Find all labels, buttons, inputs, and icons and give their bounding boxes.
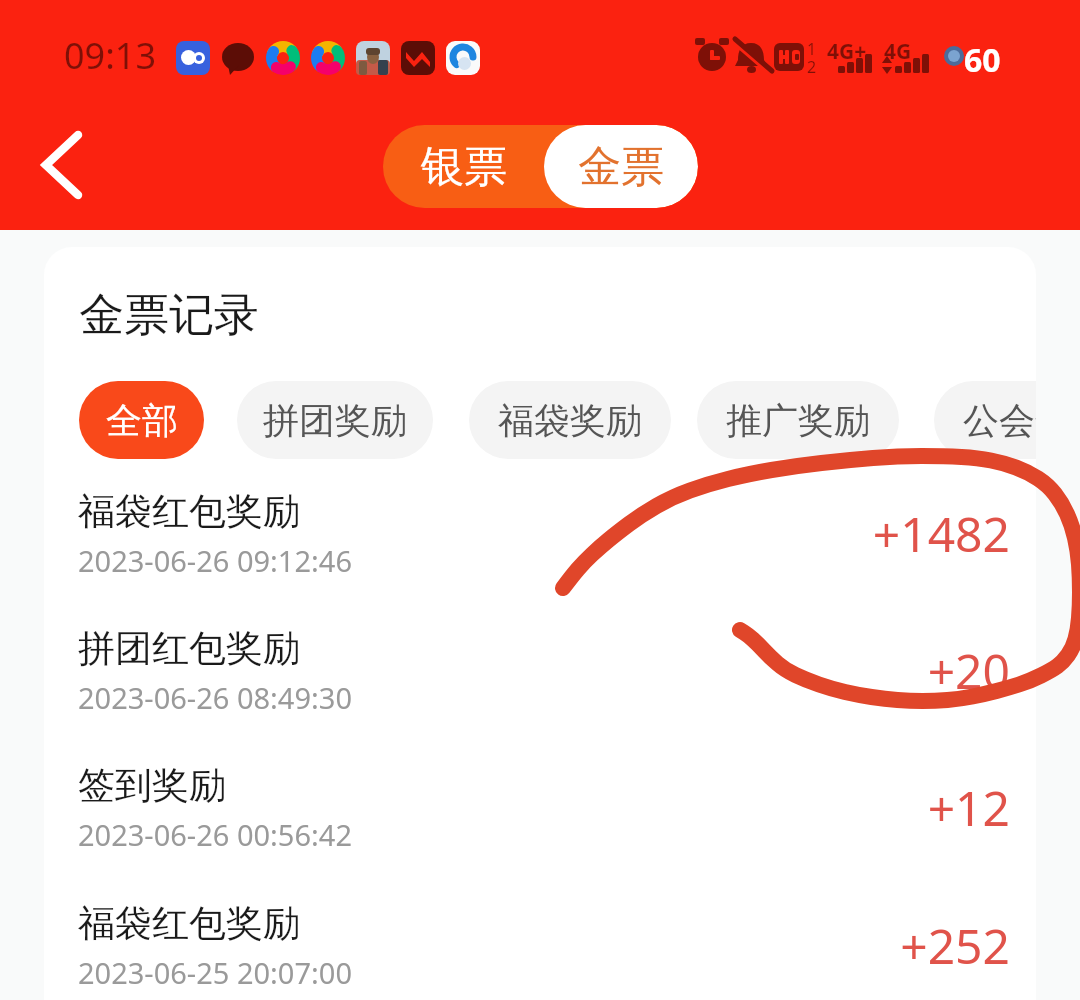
button[interactable]: Back: [10, 110, 120, 220]
staticText: 2023-06-26 08:49:30: [78, 678, 352, 717]
button[interactable]: 银票: [383, 125, 544, 208]
button[interactable]: 福袋奖励: [469, 381, 671, 459]
staticText: 福袋红包奖励: [78, 900, 300, 947]
staticText: 60: [964, 38, 1001, 82]
staticText: 签到奖励: [78, 762, 226, 809]
staticText: +252: [900, 913, 1010, 978]
staticText: 推广奖励: [726, 398, 870, 443]
staticText: 拼团奖励: [263, 398, 407, 443]
staticText: 福袋红包奖励: [78, 488, 300, 535]
button[interactable]: 福袋红包奖励: [44, 877, 1036, 1000]
staticText: 2023-06-26 09:12:46: [78, 541, 352, 580]
button[interactable]: 签到奖励: [44, 739, 1036, 876]
button[interactable]: 拼团红包奖励: [44, 602, 1036, 739]
staticText: 福袋奖励: [498, 398, 642, 443]
button[interactable]: 公会奖励: [934, 381, 1036, 459]
staticText: 4G: [884, 37, 912, 66]
staticText: 拼团红包奖励: [78, 625, 300, 672]
staticText: 1 2: [807, 38, 817, 78]
staticText: 全部: [106, 398, 178, 443]
staticText: 2023-06-26 00:56:42: [78, 815, 352, 854]
staticText: 2023-06-25 20:07:00: [78, 953, 352, 992]
staticText: +1482: [872, 501, 1010, 566]
staticText: 金票记录: [79, 287, 259, 344]
staticText: +20: [927, 638, 1010, 703]
button[interactable]: 拼团奖励: [237, 381, 433, 459]
staticText: 4G+: [827, 37, 867, 66]
staticText: 金票: [578, 140, 664, 194]
staticText: 公会奖励: [963, 398, 1036, 443]
button[interactable]: 全部: [79, 381, 204, 459]
staticText: +12: [927, 775, 1010, 840]
staticText: 09:13: [64, 31, 157, 80]
button[interactable]: 福袋红包奖励: [44, 465, 1036, 602]
staticText: 银票: [421, 140, 507, 194]
button[interactable]: 金票: [544, 125, 698, 208]
button[interactable]: 推广奖励: [697, 381, 899, 459]
